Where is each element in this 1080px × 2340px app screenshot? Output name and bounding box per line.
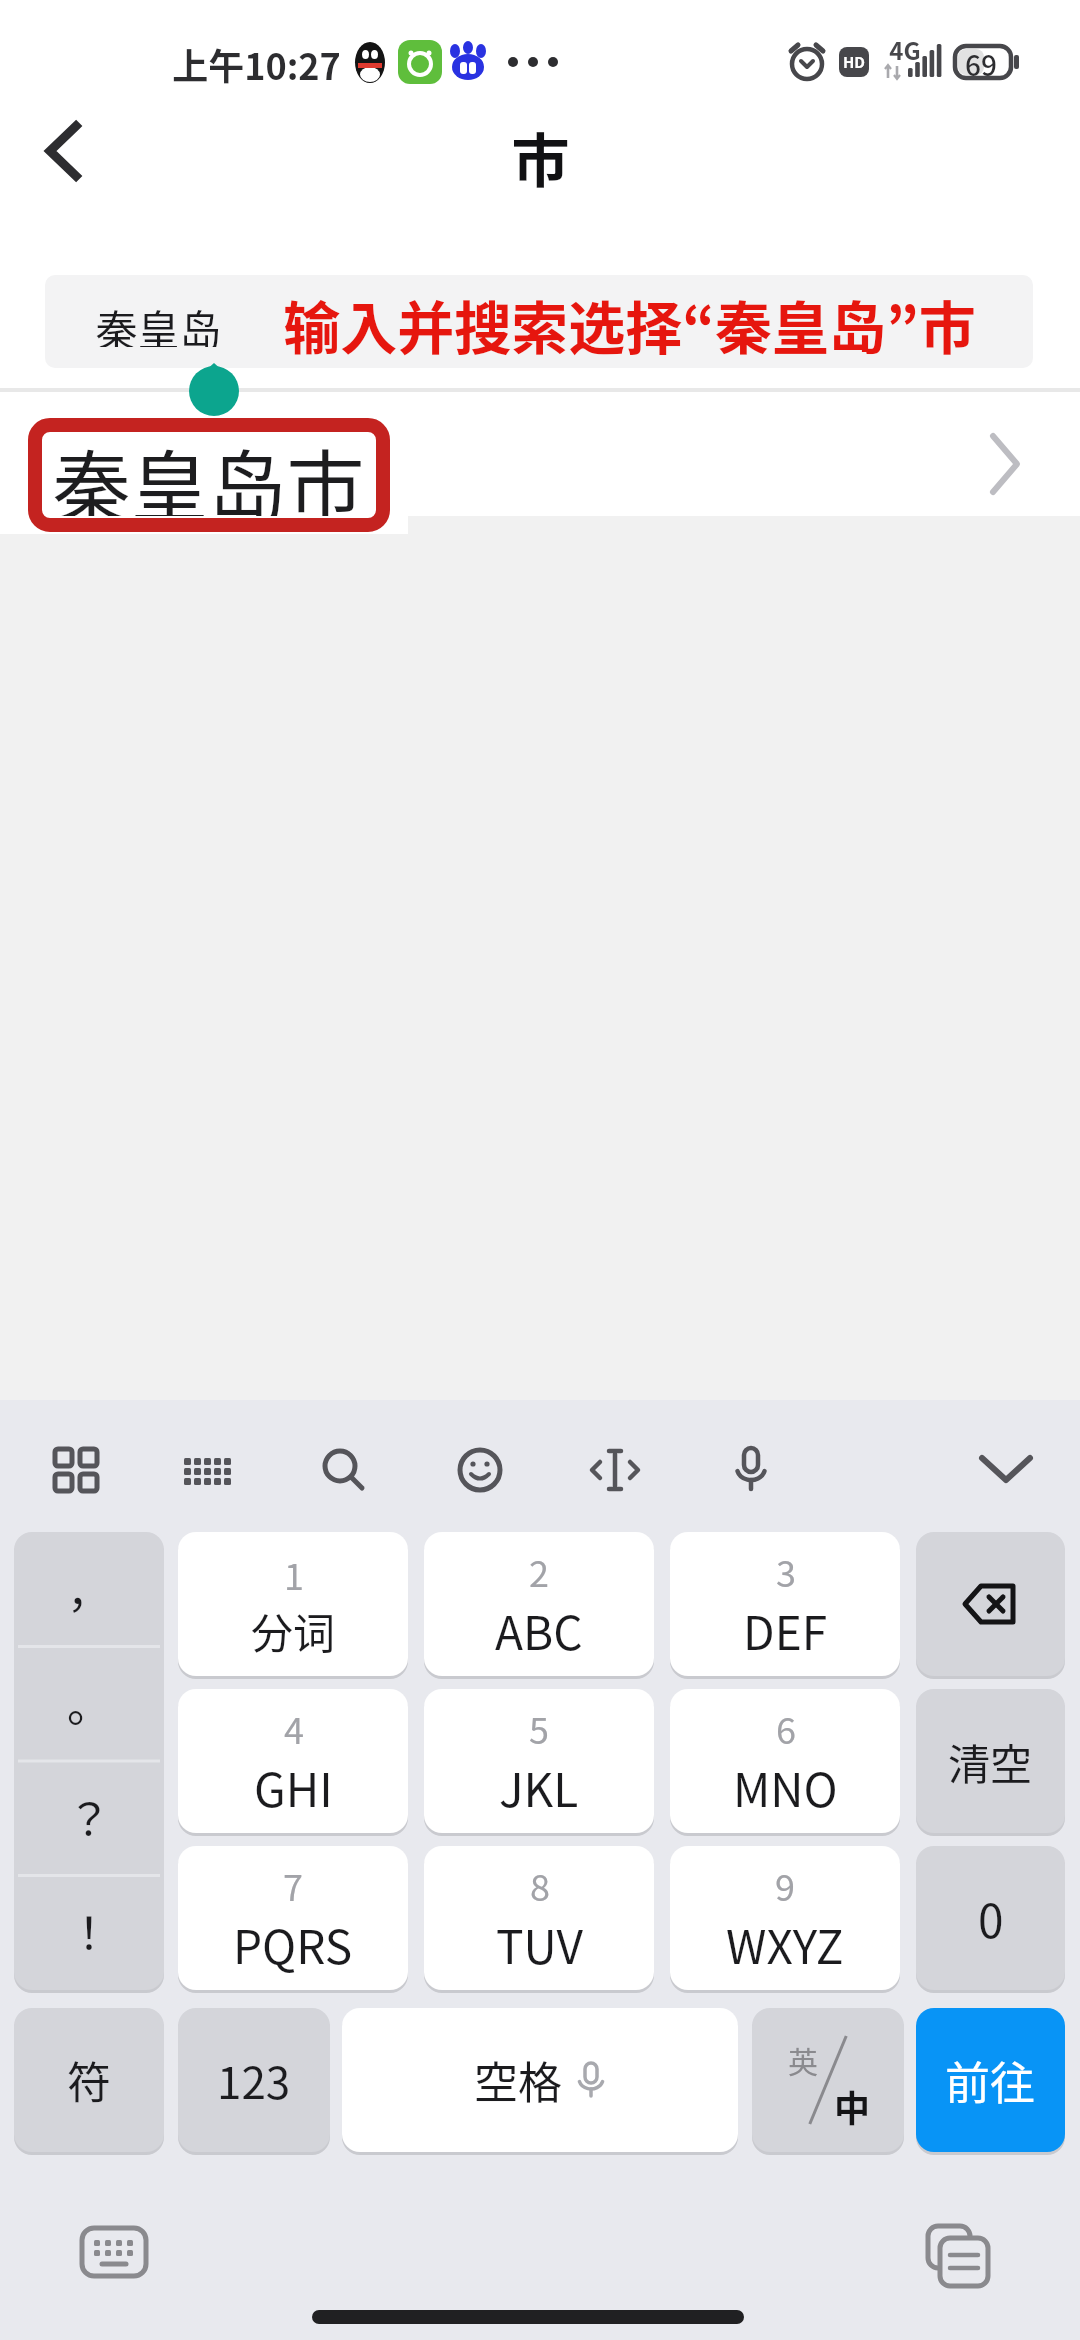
button[interactable]: 0 <box>916 1846 1065 1990</box>
button[interactable] <box>916 1532 1065 1676</box>
staticText: 4G <box>889 32 921 62</box>
button[interactable] <box>183 1446 233 1496</box>
button[interactable]: 1 <box>178 1532 408 1676</box>
button[interactable] <box>0 392 1080 516</box>
staticText: 符 <box>67 2048 111 2112</box>
staticText: WXYZ <box>726 1911 844 1978</box>
staticText: 英 <box>788 2038 818 2081</box>
staticText: 秦皇岛市 <box>52 426 365 516</box>
staticText: 分词 <box>251 1600 336 1661</box>
button[interactable]: 3 <box>670 1532 900 1676</box>
button[interactable]: 6 <box>670 1689 900 1833</box>
staticText: 9 <box>775 1859 795 1911</box>
staticText: ， <box>67 1557 111 1621</box>
button[interactable] <box>456 1446 504 1494</box>
staticText: 4 <box>284 1702 304 1754</box>
staticText: 前往 <box>945 2048 1036 2113</box>
staticText: 7 <box>283 1859 303 1911</box>
staticText: 1 <box>284 1548 304 1600</box>
staticText: JKL <box>499 1754 579 1821</box>
staticText: PQRS <box>233 1911 353 1978</box>
button[interactable]: 2 <box>424 1532 654 1676</box>
staticText: 输入并搜索选择“秦皇岛”市 <box>283 283 976 361</box>
button[interactable] <box>14 1532 164 1990</box>
button[interactable] <box>588 1446 642 1500</box>
staticText: HD <box>843 51 866 73</box>
staticText: 中 <box>834 2080 871 2132</box>
staticText: ！ <box>67 1899 111 1963</box>
staticText: 秦皇岛 <box>95 297 222 347</box>
staticText: 8 <box>530 1859 550 1911</box>
button[interactable] <box>727 1446 775 1494</box>
staticText: 。 <box>67 1671 111 1735</box>
staticText: 6 <box>776 1702 796 1754</box>
button[interactable]: 8 <box>424 1846 654 1990</box>
button[interactable] <box>80 2222 148 2282</box>
button[interactable]: 空格 <box>342 2008 738 2152</box>
button[interactable]: 9 <box>670 1846 900 1990</box>
button[interactable]: 前往 <box>916 2008 1065 2152</box>
button[interactable] <box>52 1446 100 1494</box>
button[interactable] <box>42 122 86 180</box>
button[interactable] <box>978 1454 1034 1490</box>
staticText: DEF <box>743 1597 828 1664</box>
button[interactable] <box>320 1446 368 1494</box>
button[interactable]: 5 <box>424 1689 654 1833</box>
staticText: 3 <box>776 1545 796 1597</box>
button[interactable]: 清空 <box>916 1689 1065 1833</box>
staticText: 0 <box>978 1885 1004 1952</box>
staticText: 清空 <box>948 1731 1033 1792</box>
staticText: 69 <box>965 44 997 80</box>
button[interactable]: 123 <box>178 2008 330 2152</box>
staticText: 2 <box>529 1545 549 1597</box>
staticText: 上午10:27 <box>172 38 340 88</box>
button[interactable] <box>45 275 1033 368</box>
button[interactable]: 符 <box>14 2008 164 2152</box>
button[interactable] <box>926 2224 992 2288</box>
button[interactable]: 英 <box>752 2008 904 2152</box>
button[interactable]: 7 <box>178 1846 408 1990</box>
staticText: ？ <box>67 1785 111 1849</box>
staticText: MNO <box>733 1754 838 1821</box>
staticText: ABC <box>495 1597 583 1664</box>
staticText: 市 <box>511 115 570 195</box>
staticText: 5 <box>529 1702 549 1754</box>
staticText: TUV <box>496 1911 583 1978</box>
staticText: GHI <box>254 1754 333 1821</box>
staticText: 123 <box>217 2048 291 2112</box>
staticText: 空格 <box>474 2048 562 2112</box>
button[interactable]: 4 <box>178 1689 408 1833</box>
